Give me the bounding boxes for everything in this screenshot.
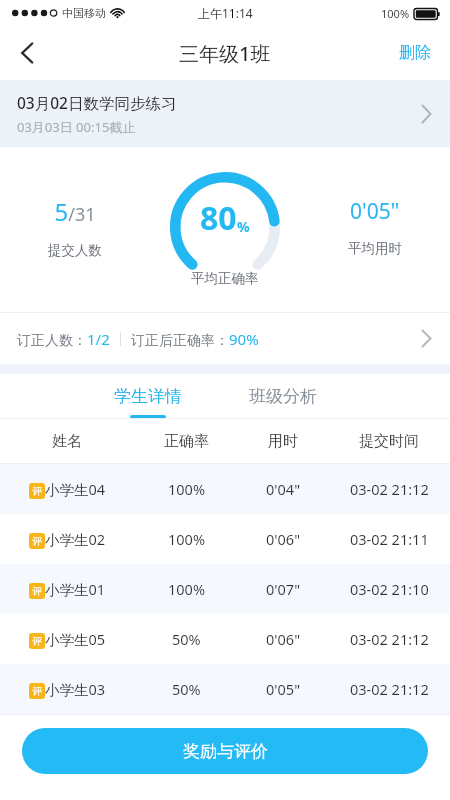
staticText: 用时 [268,432,298,451]
staticText: 5/31 [54,195,96,228]
staticText: 正确率 [164,432,209,451]
staticText: 100% [168,529,205,549]
staticText: 订正后正确率：90% [131,329,259,349]
button[interactable]: 03月02日数学同步练习 [0,80,450,147]
button[interactable]: 评 [0,464,450,514]
button[interactable]: 订正人数：1/2 [0,313,450,364]
button[interactable]: 评 [0,564,450,614]
staticText: 03-02 21:12 [350,679,429,699]
button[interactable]: 学生详情 [80,374,215,419]
staticText: 奖励与评价 [183,741,268,762]
staticText: 03-02 21:12 [350,479,429,499]
staticText: 50% [172,629,201,649]
staticText: 上午11:14 [198,5,253,21]
staticText: % [237,217,250,236]
staticText: 小学生03 [45,679,106,699]
staticText: 平均用时 [348,240,402,257]
staticText: 0'06" [266,629,301,649]
staticText: 80 [200,196,237,240]
staticText: 小学生04 [45,479,106,499]
staticText: 03-02 21:12 [350,629,429,649]
staticText: 100% [168,579,205,599]
staticText: 提交时间 [359,432,419,451]
staticText: 03月02日数学同步练习 [17,92,177,113]
staticText: 平均正确率 [191,270,259,287]
staticText: 小学生01 [45,579,106,599]
staticText: 删除 [399,43,431,63]
staticText: 100% [168,479,205,499]
staticText: 评 [32,685,42,698]
staticText: 0'05" [266,679,301,699]
staticText: 03-02 21:11 [350,529,429,549]
staticText: 0'05" [350,197,400,226]
staticText: 03月03日 00:15截止 [17,118,136,136]
staticText: 100% [381,6,410,21]
staticText: 姓名 [52,432,82,451]
staticText: 评 [32,585,42,598]
staticText: 0'06" [266,529,301,549]
staticText: 小学生02 [45,529,106,549]
button[interactable]: Back [0,26,54,80]
staticText: 评 [32,535,42,548]
staticText: 0'07" [266,579,301,599]
staticText: 小学生05 [45,629,106,649]
button[interactable]: 班级分析 [215,374,350,419]
staticText: 班级分析 [249,386,317,407]
staticText: 中国移动 [62,6,106,20]
button[interactable]: 删除 [384,26,446,80]
staticText: 0'04" [266,479,301,499]
button[interactable]: 评 [0,664,450,714]
staticText: 50% [172,679,201,699]
button[interactable]: 评 [0,514,450,564]
staticText: 提交人数 [48,242,102,259]
staticText: 评 [32,635,42,648]
staticText: 三年级1班 [179,40,271,67]
staticText: 评 [32,485,42,498]
staticText: 学生详情 [114,386,182,407]
staticText: 03-02 21:10 [350,579,429,599]
button[interactable]: 奖励与评价 [22,728,428,774]
button[interactable]: 评 [0,614,450,664]
staticText: 订正人数：1/2 [17,329,110,349]
